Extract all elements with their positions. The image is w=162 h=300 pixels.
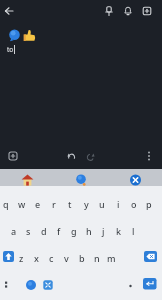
button[interactable] [143,250,157,263]
button[interactable]: j [96,217,111,244]
button[interactable]: b [74,244,89,271]
staticText: j [102,225,105,237]
staticText: b [79,252,85,264]
button[interactable]: f [51,217,66,244]
staticText: p [146,198,152,210]
button[interactable]: c [44,244,59,271]
button[interactable] [41,276,55,293]
button[interactable]: m [104,244,119,271]
staticText: h [86,225,92,237]
staticText: n [94,252,100,264]
button[interactable] [0,169,54,186]
button[interactable] [118,2,137,20]
staticText: e [35,198,41,210]
button[interactable]: d [36,217,51,244]
button[interactable]: l [126,217,141,244]
staticText: l [132,225,135,237]
staticText: o [131,198,137,210]
button[interactable] [99,2,118,20]
button[interactable]: r [46,190,62,217]
staticText: a [11,225,17,237]
button[interactable]: y [78,190,94,217]
button[interactable] [142,277,157,290]
staticText: x [34,252,39,264]
button[interactable]: w [14,190,30,217]
staticText: m [107,252,116,264]
button[interactable] [2,250,14,263]
button[interactable]: z [14,244,29,271]
button[interactable] [0,2,17,20]
button[interactable]: g [66,217,81,244]
staticText: d [41,225,47,237]
staticText: c [49,252,54,264]
button[interactable]: s [21,217,36,244]
staticText: k [116,225,122,237]
button[interactable] [137,2,156,20]
button[interactable]: u [94,190,110,217]
button[interactable]: n [89,244,104,271]
button[interactable]: p [142,190,155,217]
button[interactable] [63,148,79,164]
staticText: s [26,225,31,237]
button[interactable]: a [6,217,21,244]
button[interactable]: v [59,244,74,271]
button[interactable] [82,148,98,164]
button[interactable]: e [30,190,46,217]
button[interactable]: k [111,217,126,244]
button[interactable]: x [29,244,44,271]
staticText: t [68,198,72,210]
staticText: u [99,198,105,210]
button[interactable]: q [0,190,14,217]
button[interactable] [108,169,162,186]
button[interactable] [5,148,21,164]
button[interactable]: h [81,217,96,244]
button[interactable] [141,148,157,164]
staticText: y [84,198,89,210]
staticText: i [117,198,120,210]
button[interactable] [23,276,38,293]
button[interactable] [124,275,136,295]
staticText: w [18,198,26,210]
staticText: to [7,45,14,54]
button[interactable] [0,275,12,295]
button[interactable] [54,169,108,186]
button[interactable]: i [110,190,126,217]
staticText: v [64,252,69,264]
staticText: z [19,252,24,264]
staticText: g [71,225,77,237]
button[interactable]: o [126,190,142,217]
button[interactable]: t [62,190,78,217]
staticText: q [3,198,9,210]
staticText: f [57,225,61,237]
staticText: r [52,198,56,210]
